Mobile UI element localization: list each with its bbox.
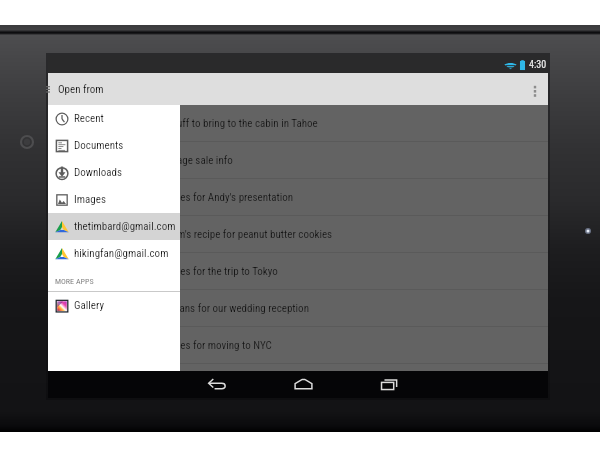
other: Navigation menu (46, 83, 50, 95)
button[interactable]: Recent apps (346, 371, 432, 398)
button[interactable]: Images (48, 186, 180, 213)
staticText: m's recipe for peanut butter cookies (177, 228, 333, 241)
button[interactable]: Back (174, 371, 260, 398)
staticText: MORE APPS (55, 277, 94, 286)
staticText: Recent (74, 112, 104, 125)
staticText: lans for our wedding reception (177, 302, 309, 315)
staticText: Images (74, 193, 106, 206)
staticText: tes for moving to NYC (177, 339, 272, 352)
staticText: Downloads (74, 166, 123, 179)
button[interactable]: thetimbard@gmail.com (48, 213, 180, 240)
button[interactable]: tes for Andy's presentation (48, 179, 548, 216)
button[interactable]: m's recipe for peanut butter cookies (48, 216, 548, 253)
staticText: hikingfan@gmail.com (74, 247, 169, 260)
button[interactable]: uff to bring to the cabin in Tahoe (48, 105, 548, 142)
button[interactable]: Documents (48, 132, 180, 159)
button[interactable]: tes for the trip to Tokyo (48, 253, 548, 290)
button[interactable]: Home (260, 371, 346, 398)
staticText: age sale info (177, 154, 233, 167)
staticText: Open from (58, 83, 104, 96)
staticText: thetimbard@gmail.com (74, 220, 176, 233)
staticText: 4:30 (529, 59, 547, 71)
staticText: tes for the trip to Tokyo (177, 265, 278, 278)
staticText: Gallery (74, 299, 105, 312)
button[interactable]: hikingfan@gmail.com (48, 240, 180, 267)
button[interactable]: lans for our wedding reception (48, 290, 548, 327)
staticText: tes for Andy's presentation (177, 191, 294, 204)
button[interactable]: More options (522, 73, 548, 105)
button[interactable]: Recent (48, 105, 180, 132)
staticText: uff to bring to the cabin in Tahoe (177, 117, 318, 130)
button[interactable]: age sale info (48, 142, 548, 179)
button[interactable]: Gallery (48, 292, 180, 319)
staticText: Documents (74, 139, 124, 152)
button[interactable]: tes for moving to NYC (48, 327, 548, 364)
button[interactable]: Downloads (48, 159, 180, 186)
